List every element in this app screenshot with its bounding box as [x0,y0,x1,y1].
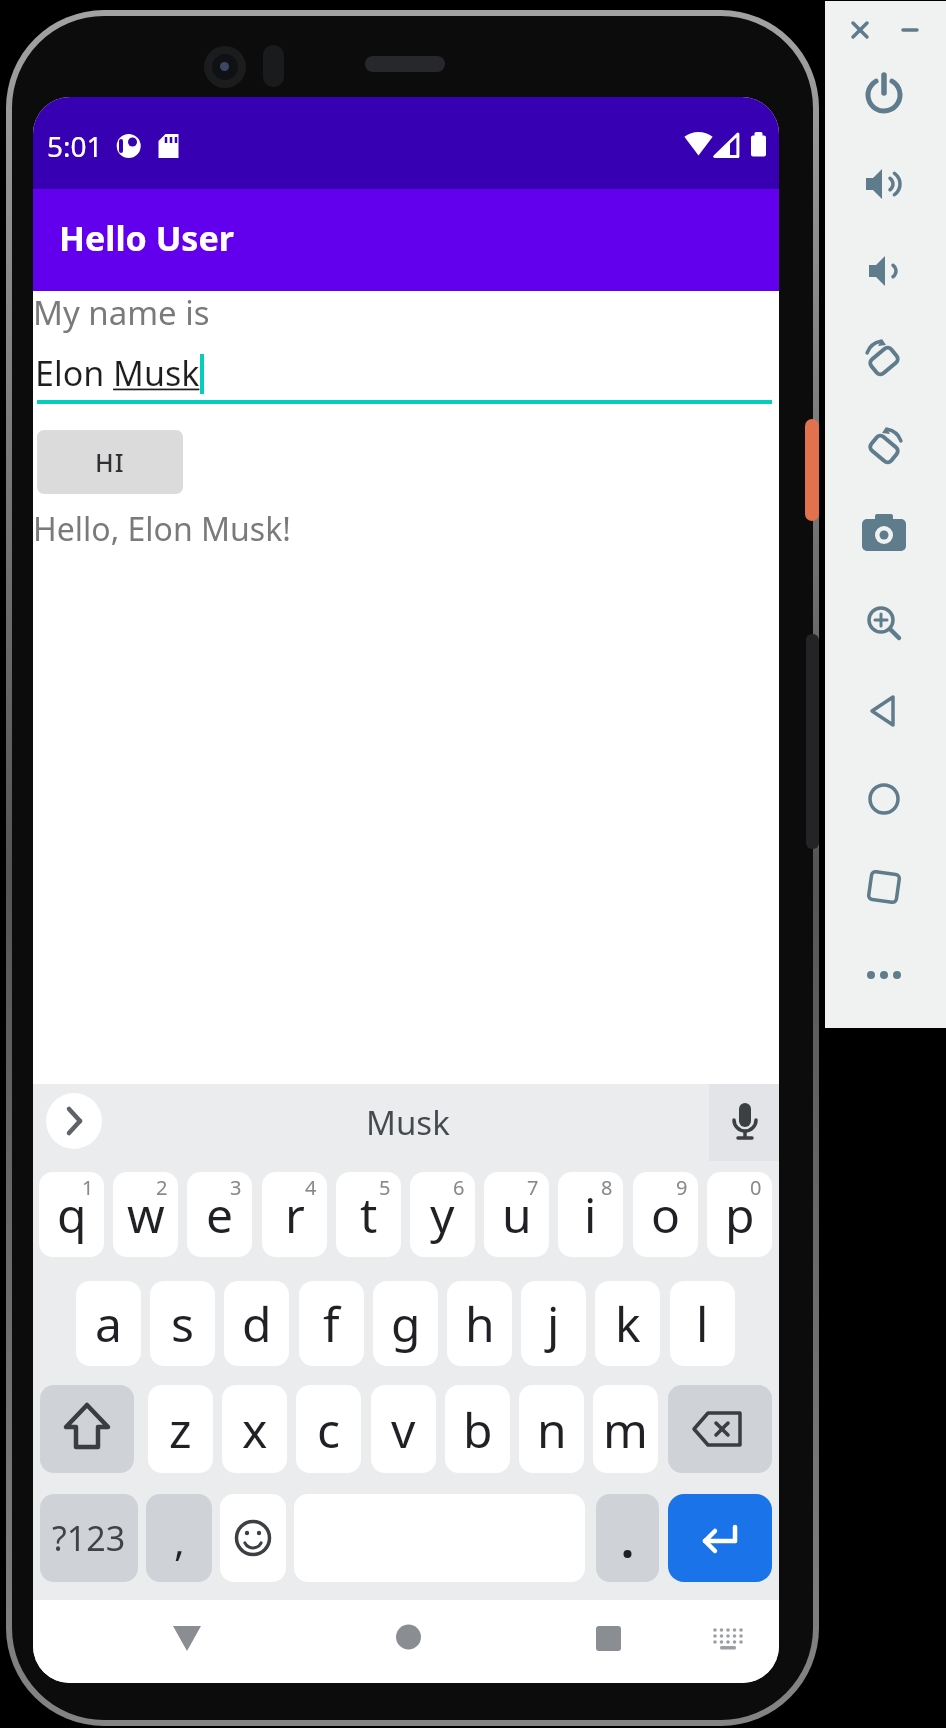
button[interactable]: n [519,1385,584,1473]
staticText: a [95,1291,122,1356]
button[interactable]: w [113,1172,178,1257]
button[interactable] [378,1607,438,1667]
staticText: t [360,1182,378,1247]
staticText: v [391,1397,416,1462]
staticText: o [651,1182,681,1247]
button[interactable]: s [150,1281,215,1366]
button[interactable]: r [262,1172,327,1257]
button[interactable]: z [148,1385,213,1473]
staticText: e [206,1182,234,1247]
staticText: Hello, Elon Musk! [33,507,291,551]
button[interactable]: g [373,1281,438,1366]
button[interactable]: t [336,1172,401,1257]
staticText: g [391,1291,421,1356]
staticText: j [547,1291,560,1356]
button[interactable] [157,1610,217,1670]
staticText: x [242,1397,268,1462]
button[interactable]: a [76,1281,141,1366]
button[interactable]: h [447,1281,512,1366]
button[interactable]: x [222,1385,287,1473]
staticText: Elon Musk [35,350,200,396]
staticText: p [725,1182,755,1247]
button[interactable]: j [521,1281,586,1366]
button[interactable] [888,8,932,52]
button[interactable] [668,1385,772,1473]
button[interactable] [862,337,906,381]
button[interactable]: e [187,1172,252,1257]
staticText: c [317,1397,341,1462]
button[interactable] [862,249,906,293]
staticText: 9 [676,1174,688,1201]
button[interactable]: b [445,1385,510,1473]
staticText: 2 [156,1174,168,1201]
staticText: u [502,1182,532,1247]
staticText: 3 [230,1174,242,1201]
staticText: Hello User [59,215,234,261]
staticText: m [603,1397,648,1462]
staticText: My name is [33,290,210,335]
button[interactable]: l [670,1281,735,1366]
button[interactable]: d [224,1281,289,1366]
staticText: z [169,1397,192,1462]
staticText: 8 [601,1174,613,1201]
button[interactable] [46,1093,102,1149]
button[interactable] [862,162,906,206]
button[interactable] [596,1494,659,1582]
button[interactable]: c [296,1385,361,1473]
staticText: 7 [527,1174,539,1201]
staticText: 1 [82,1174,94,1201]
staticText: w [127,1182,165,1247]
staticText: k [615,1291,641,1356]
staticText: 0 [750,1174,762,1201]
button[interactable] [862,777,906,821]
button[interactable]: v [371,1385,436,1473]
staticText: , [174,1513,185,1567]
staticText: f [323,1291,340,1356]
staticText: ?123 [52,1515,126,1561]
button[interactable] [862,865,906,909]
staticText: 6 [453,1174,465,1201]
staticText: i [584,1182,597,1247]
button[interactable]: ?123 [40,1494,138,1582]
staticText: h [465,1291,495,1356]
staticText: 5:01 [47,127,103,165]
staticText: 5 [379,1174,391,1201]
staticText: r [285,1182,305,1247]
staticText: d [242,1291,272,1356]
button[interactable]: p [707,1172,772,1257]
button[interactable]: q [39,1172,104,1257]
button[interactable]: , [146,1494,212,1582]
button[interactable] [40,1385,134,1473]
staticText: 4 [305,1174,317,1201]
button[interactable]: y [410,1172,475,1257]
button[interactable] [862,73,906,117]
staticText: n [537,1397,567,1462]
button[interactable]: m [593,1385,658,1473]
button[interactable] [838,8,882,52]
staticText: HI [95,445,125,479]
button[interactable]: f [299,1281,364,1366]
button[interactable]: u [484,1172,549,1257]
button[interactable]: k [595,1281,660,1366]
button[interactable] [862,689,906,733]
staticText: q [57,1182,87,1247]
staticText: b [463,1397,493,1462]
button[interactable]: i [558,1172,623,1257]
button[interactable] [715,1091,775,1151]
button[interactable]: HI [37,430,183,494]
button[interactable] [697,1610,757,1670]
button[interactable]: o [633,1172,698,1257]
button[interactable] [220,1494,286,1582]
staticText: y [430,1182,455,1247]
button[interactable] [578,1608,638,1668]
button[interactable] [862,513,906,557]
staticText: s [171,1291,194,1356]
button[interactable] [862,601,906,645]
button[interactable]: Musk [333,1093,483,1151]
button[interactable] [668,1494,772,1582]
staticText: l [696,1291,709,1356]
button[interactable] [862,953,906,997]
staticText: Musk [366,1100,450,1145]
button[interactable] [862,425,906,469]
